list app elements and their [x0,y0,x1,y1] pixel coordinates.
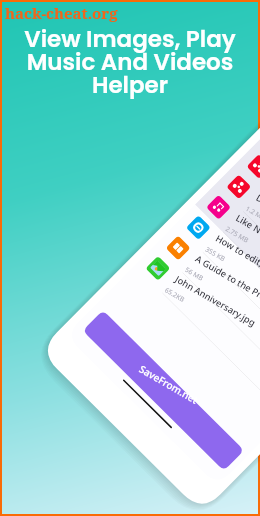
staticText: hack-cheat.org [5,3,118,23]
staticText: View Images, Play Music And Videos Helpe… [24,23,236,101]
